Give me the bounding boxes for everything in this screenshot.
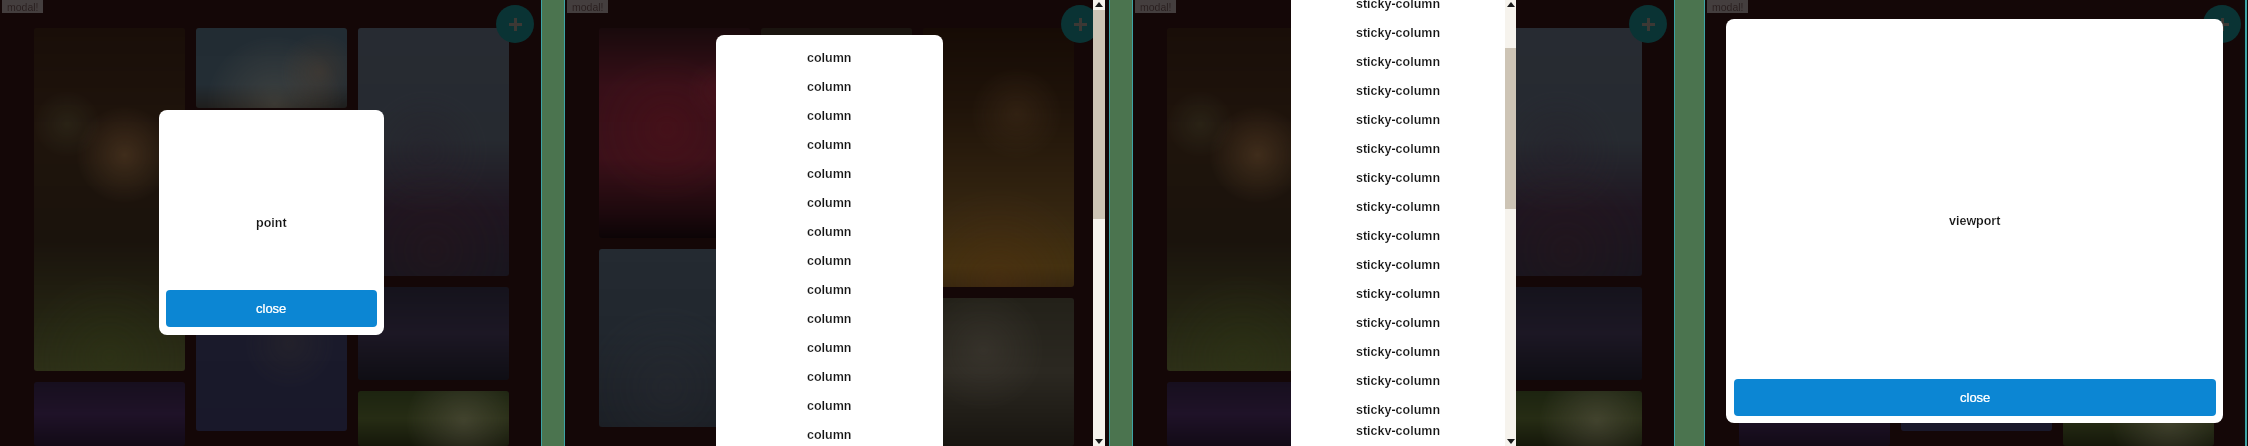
button[interactable] <box>1491 28 1642 276</box>
button[interactable] <box>1329 28 1480 108</box>
button[interactable] <box>358 391 509 446</box>
button[interactable] <box>2063 391 2214 446</box>
staticText: sticky-column <box>1356 258 1441 272</box>
button[interactable] <box>1739 382 1890 446</box>
staticText: sticky-column <box>1356 26 1441 40</box>
button[interactable] <box>1491 391 1642 446</box>
staticText: sticky-column <box>1356 84 1441 98</box>
staticText: sticky-column <box>1356 113 1441 127</box>
staticText: sticky-column <box>1356 229 1441 243</box>
staticText: column <box>807 254 852 268</box>
button[interactable] <box>599 249 750 427</box>
staticText: column <box>807 399 852 413</box>
button[interactable] <box>196 28 347 108</box>
button[interactable]: close <box>1734 379 2216 416</box>
staticText: sticky-column <box>1356 374 1441 388</box>
button[interactable]: Add <box>496 5 534 43</box>
button[interactable] <box>34 382 185 446</box>
staticText: sticky-column <box>1356 424 1441 435</box>
button[interactable] <box>358 28 509 276</box>
button[interactable] <box>761 28 912 283</box>
button[interactable]: Add <box>1061 5 1099 43</box>
button[interactable] <box>34 28 185 371</box>
staticText: sticky-column <box>1356 142 1441 156</box>
button[interactable] <box>1167 382 1318 446</box>
staticText: sticky-column <box>1356 55 1441 69</box>
staticText: column <box>807 312 852 326</box>
staticText: sticky-column <box>1356 403 1441 417</box>
staticText: column <box>807 109 852 123</box>
button[interactable]: Add <box>1629 5 1667 43</box>
button[interactable] <box>923 298 1074 446</box>
staticText: sticky-column <box>1356 171 1441 185</box>
button[interactable] <box>1167 28 1318 371</box>
staticText: modal! <box>572 1 604 13</box>
button[interactable] <box>761 294 912 434</box>
staticText: modal! <box>1140 1 1172 13</box>
button[interactable] <box>599 28 750 238</box>
staticText: sticky-column <box>1356 316 1441 330</box>
button[interactable] <box>358 287 509 380</box>
button[interactable] <box>1491 287 1642 380</box>
button[interactable] <box>196 119 347 431</box>
staticText: close <box>1960 390 1991 405</box>
staticText: column <box>807 51 852 65</box>
button[interactable]: Add <box>2203 5 2241 43</box>
button[interactable] <box>923 28 1074 287</box>
staticText: sticky-column <box>1356 0 1441 11</box>
staticText: sticky-column <box>1356 345 1441 359</box>
staticText: column <box>807 196 852 210</box>
staticText: column <box>807 370 852 384</box>
staticText: viewport <box>1949 214 2001 228</box>
staticText: column <box>807 225 852 239</box>
button[interactable] <box>1329 119 1480 431</box>
staticText: column <box>807 138 852 152</box>
staticText: close <box>256 301 287 316</box>
staticText: column <box>807 341 852 355</box>
staticText: column <box>807 283 852 297</box>
staticText: column <box>807 80 852 94</box>
staticText: sticky-column <box>1356 200 1441 214</box>
staticText: modal! <box>1712 1 1744 13</box>
button[interactable] <box>2063 287 2214 380</box>
button[interactable]: close <box>166 290 377 327</box>
staticText: column <box>807 428 852 442</box>
staticText: modal! <box>7 1 39 13</box>
staticText: sticky-column <box>1356 287 1441 301</box>
button[interactable] <box>1901 119 2052 431</box>
staticText: column <box>807 167 852 181</box>
staticText: point <box>256 216 287 230</box>
